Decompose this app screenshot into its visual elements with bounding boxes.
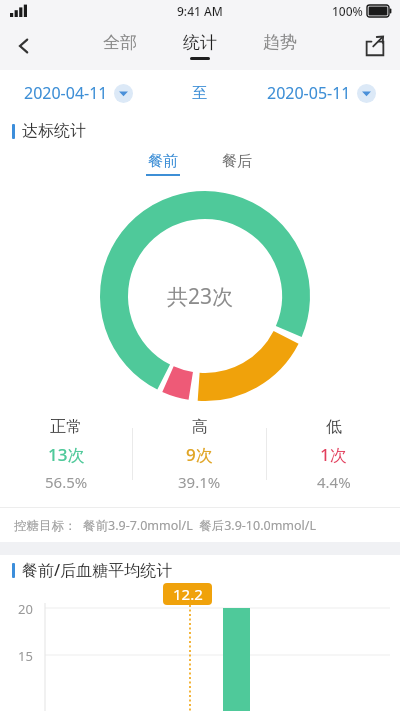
button[interactable]: 高: [133, 410, 266, 498]
staticText: 56.5%: [45, 472, 88, 492]
button[interactable]: 2020-04-11: [24, 78, 133, 108]
button[interactable]: 趋势: [259, 28, 301, 64]
button[interactable]: 餐后: [214, 152, 260, 176]
staticText: 15: [18, 647, 33, 665]
staticText: 4.4%: [317, 472, 351, 492]
button[interactable]: 返回: [0, 22, 48, 70]
button[interactable]: 分享: [350, 22, 400, 70]
staticText: 餐前: [148, 152, 178, 171]
staticText: 20: [18, 600, 33, 618]
button[interactable]: 2020-05-11: [267, 78, 376, 108]
staticText: 9:41 AM: [177, 3, 223, 19]
staticText: 餐后: [222, 152, 252, 171]
button[interactable]: 正常: [0, 410, 132, 498]
staticText: 低: [326, 417, 342, 437]
staticText: 100%: [332, 3, 363, 19]
staticText: 1次: [320, 443, 347, 466]
staticText: 统计: [183, 32, 217, 53]
staticText: 餐前/后血糖平均统计: [22, 559, 173, 581]
staticText: 趋势: [263, 32, 297, 53]
staticText: 全部: [103, 32, 137, 53]
staticText: 达标统计: [22, 121, 86, 141]
staticText: 正常: [50, 417, 82, 437]
staticText: 高: [192, 417, 208, 437]
staticText: 控糖目标： 餐前3.9-7.0mmol/L 餐后3.9-10.0mmol/L: [14, 517, 317, 534]
staticText: 12.2: [173, 584, 203, 604]
staticText: 2020-05-11: [267, 82, 351, 104]
staticText: 9次: [186, 443, 213, 466]
staticText: 2020-04-11: [24, 82, 108, 104]
button[interactable]: 餐前: [140, 152, 186, 176]
button[interactable]: 统计: [179, 28, 221, 64]
button[interactable]: 低: [267, 410, 400, 498]
button[interactable]: 全部: [99, 28, 141, 64]
staticText: 39.1%: [178, 472, 221, 492]
staticText: 共23次: [167, 282, 234, 311]
staticText: 至: [192, 84, 207, 103]
staticText: 13次: [48, 443, 85, 466]
